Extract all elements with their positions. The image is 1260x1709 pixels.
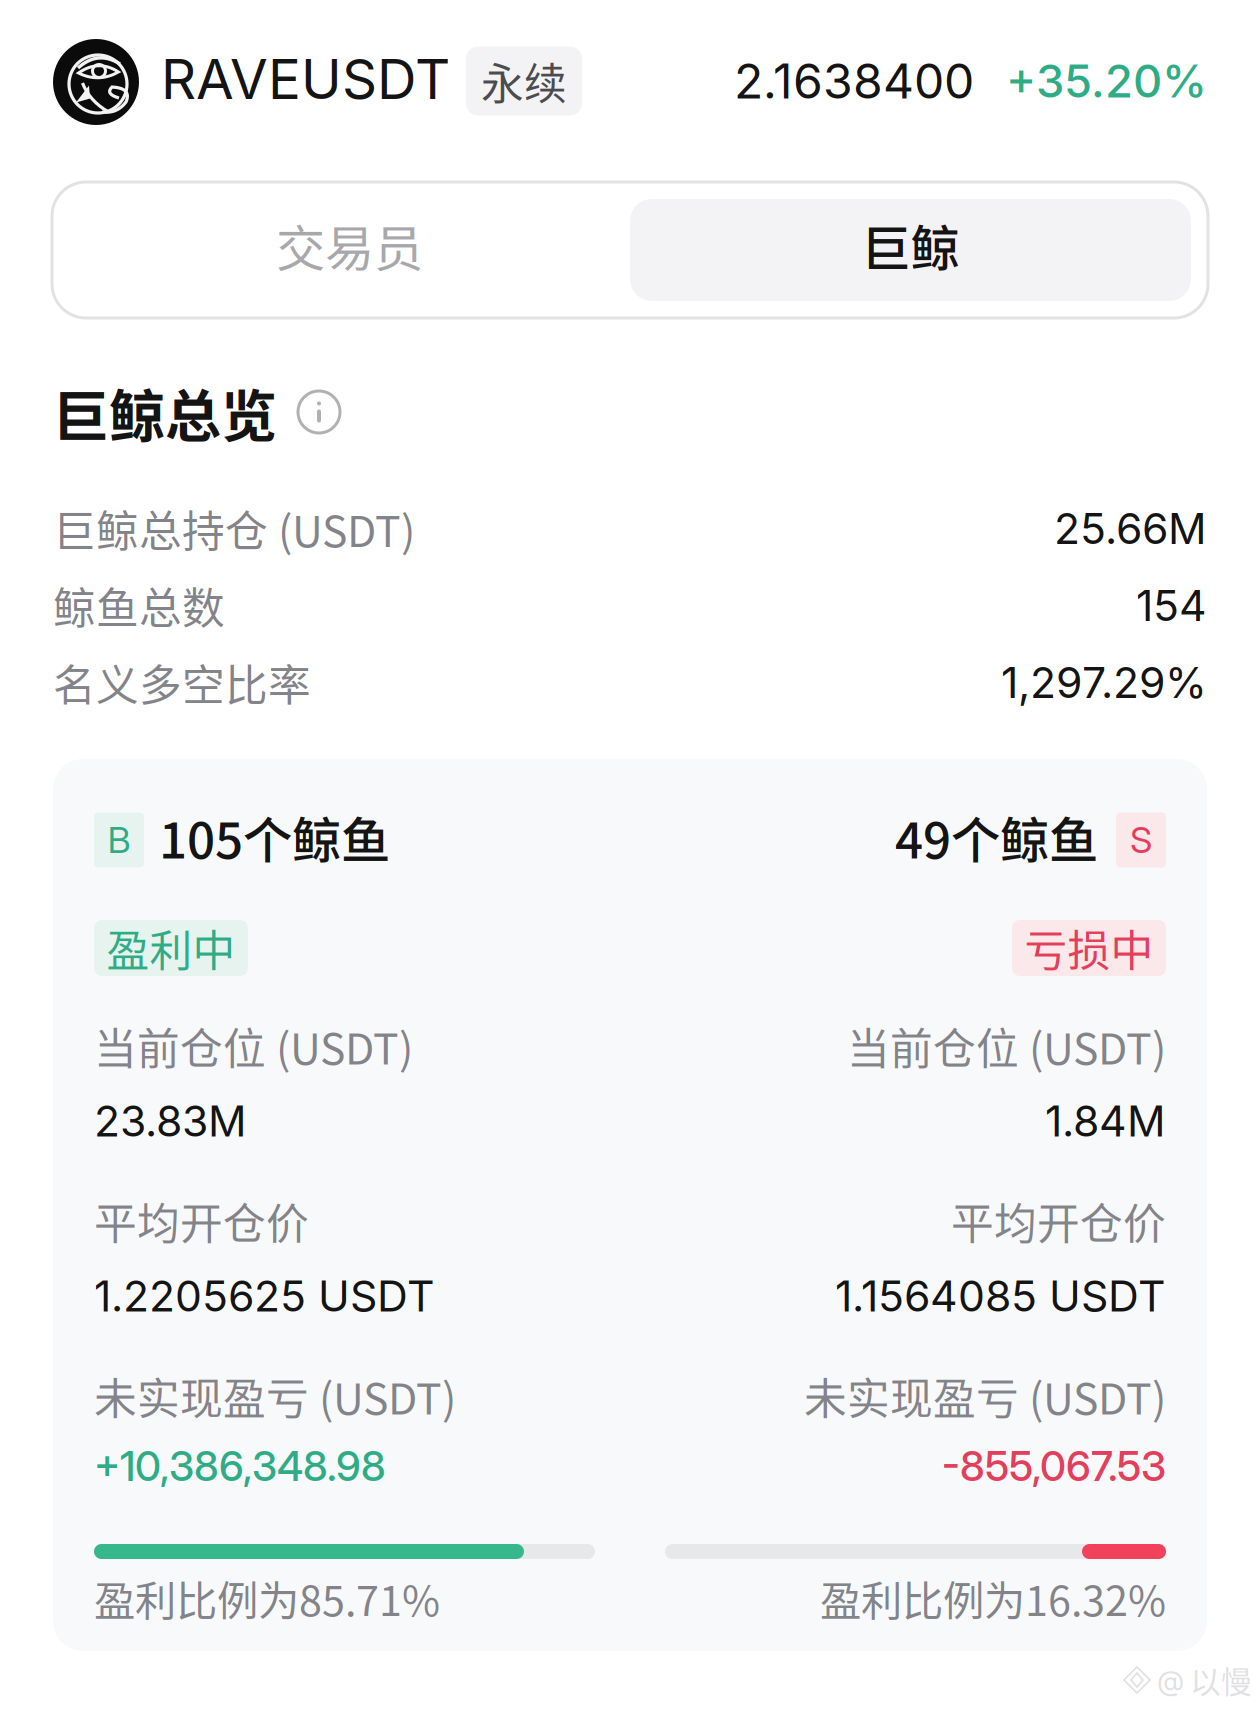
staticText: 未实现盈亏 (USDT) — [804, 1365, 1166, 1427]
staticText: 巨鲸 — [861, 209, 959, 281]
staticText: 未实现盈亏 (USDT) — [94, 1365, 456, 1427]
staticText: 105个鲸鱼 — [159, 801, 390, 873]
staticText: 盈利比例为16.32% — [820, 1568, 1166, 1628]
staticText: 1.1564085 USDT — [835, 1270, 1166, 1322]
staticText: RAVEUSDT — [161, 46, 450, 112]
staticText: 巨鲸总持仓 (USDT) — [53, 498, 415, 559]
staticText: 盈利中 — [106, 917, 235, 979]
staticText: 154 — [1136, 580, 1207, 631]
button[interactable]: 巨鲸 — [630, 199, 1191, 301]
staticText: 鲸鱼总数 — [53, 575, 225, 636]
staticText: +10,386,348.98 — [94, 1441, 386, 1491]
staticText: 亏损中 — [1024, 917, 1153, 979]
staticText: 1.84M — [1045, 1095, 1166, 1147]
staticText: 交易员 — [276, 209, 423, 281]
staticText: 2.1638400 — [734, 52, 974, 110]
staticText: -855,067.53 — [942, 1441, 1166, 1491]
staticText: +35.20% — [1006, 54, 1207, 108]
button[interactable]: RAVEUSDT — [53, 36, 582, 122]
staticText: 23.83M — [94, 1095, 247, 1147]
staticText: 1,297.29% — [1001, 657, 1207, 708]
staticText: 以慢 — [1190, 1658, 1252, 1702]
staticText: 1.2205625 USDT — [94, 1270, 435, 1322]
staticText: 巨鲸总览 — [53, 371, 277, 453]
staticText: 平均开仓价 — [94, 1190, 309, 1252]
staticText: 名义多空比率 — [53, 652, 311, 713]
button[interactable]: 交易员 — [69, 199, 630, 301]
staticText: S — [1130, 818, 1152, 862]
staticText: @ — [1157, 1663, 1184, 1697]
staticText: 盈利比例为85.71% — [94, 1568, 440, 1628]
staticText: 49个鲸鱼 — [895, 801, 1098, 873]
staticText: 当前仓位 (USDT) — [94, 1015, 413, 1077]
staticText: 25.66M — [1054, 503, 1207, 554]
staticText: 永续 — [481, 50, 567, 112]
staticText: 平均开仓价 — [951, 1190, 1166, 1252]
staticText: 当前仓位 (USDT) — [847, 1015, 1166, 1077]
button[interactable]: 关于巨鲸总览 — [298, 391, 340, 433]
staticText: B — [107, 818, 130, 862]
